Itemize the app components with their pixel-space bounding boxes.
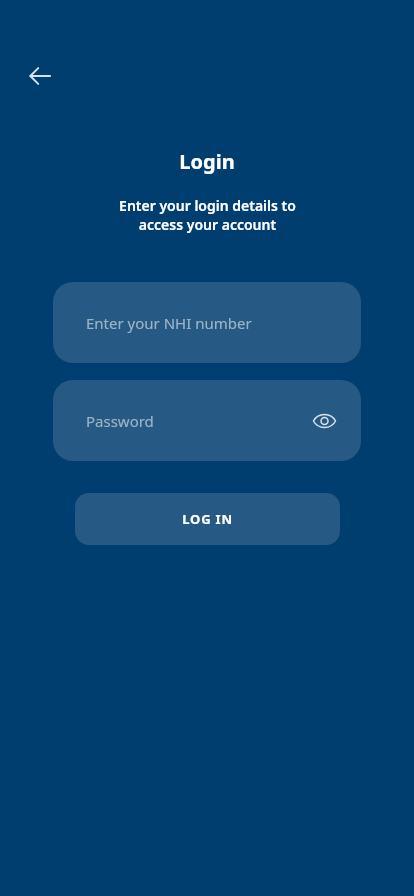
staticText: Enter your NHI number xyxy=(86,313,252,333)
button[interactable]: LOG IN xyxy=(75,493,340,545)
staticText: LOG IN xyxy=(182,510,233,528)
button[interactable]: Back xyxy=(20,56,60,96)
button[interactable]: Password xyxy=(53,380,361,461)
staticText: Login xyxy=(179,148,235,175)
staticText: Password xyxy=(86,411,154,431)
button[interactable]: Show password xyxy=(308,405,340,437)
button[interactable]: Enter your NHI number xyxy=(53,282,361,363)
staticText: Enter your login details to access your … xyxy=(119,196,296,234)
